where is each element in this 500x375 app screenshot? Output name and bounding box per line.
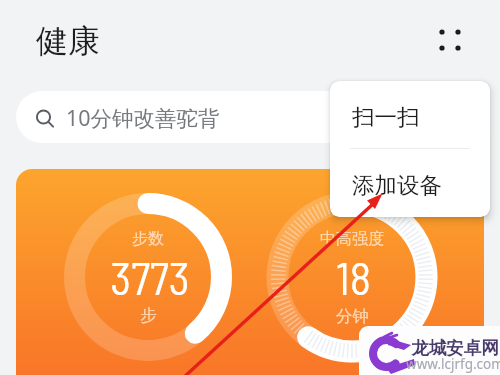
button[interactable]: 扫一扫: [330, 81, 490, 149]
button[interactable]: 添加设备: [330, 149, 490, 217]
staticText: 中高强度: [320, 229, 384, 249]
button[interactable]: More options: [430, 20, 470, 60]
staticText: www.lcjrfg.com: [406, 355, 500, 373]
button[interactable]: [16, 169, 484, 375]
staticText: 10分钟改善驼背: [66, 103, 220, 132]
staticText: 分钟: [336, 306, 369, 327]
staticText: 龙城安卓网: [411, 337, 499, 359]
staticText: 步数: [132, 229, 164, 249]
staticText: 扫一扫: [352, 103, 420, 131]
staticText: 3773: [110, 250, 190, 304]
staticText: 18: [336, 250, 371, 304]
button[interactable]: 10分钟改善驼背: [16, 91, 484, 143]
staticText: 健康: [36, 21, 100, 61]
staticText: 步: [140, 305, 157, 326]
staticText: 添加设备: [352, 171, 442, 199]
